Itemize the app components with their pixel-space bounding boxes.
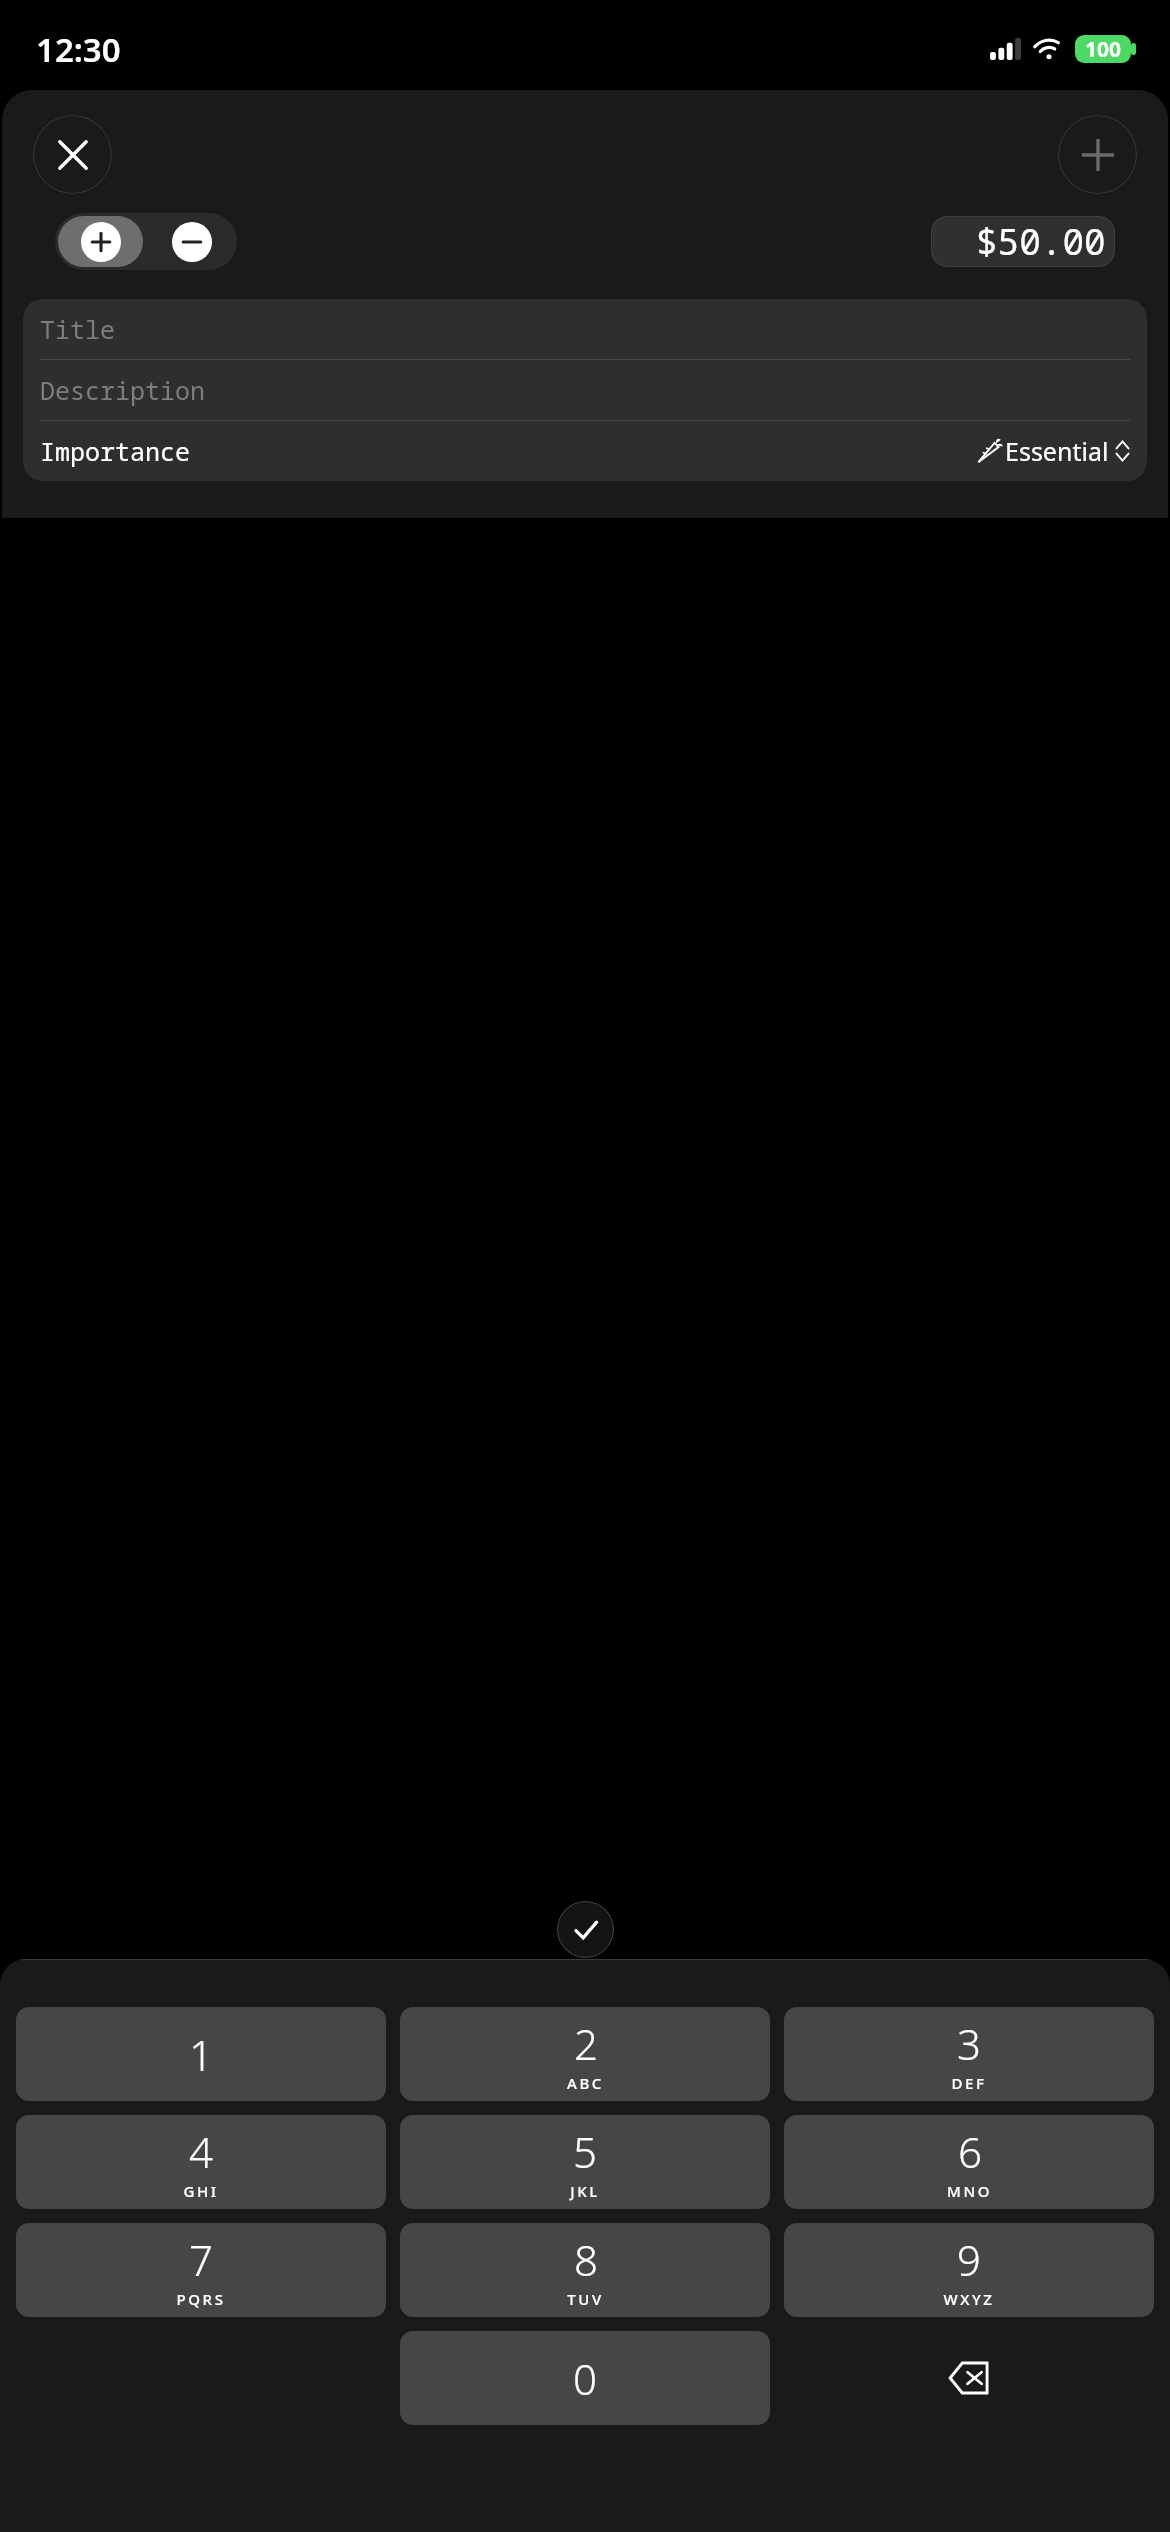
- button[interactable]: Title: [23, 299, 1147, 359]
- staticText: Title: [40, 312, 116, 346]
- staticText: 6: [958, 2123, 982, 2180]
- button[interactable]: Income: [58, 216, 143, 267]
- staticText: PQRS: [176, 2289, 226, 2309]
- staticText: 0: [573, 2350, 597, 2407]
- staticText: 7: [189, 2231, 213, 2288]
- staticText: 3: [957, 2015, 981, 2072]
- staticText: Essential: [1005, 434, 1109, 468]
- staticText: ABC: [567, 2073, 604, 2093]
- button[interactable]: 4: [16, 2115, 386, 2209]
- staticText: WXYZ: [943, 2289, 995, 2309]
- button[interactable]: Add: [1058, 115, 1137, 194]
- staticText: 1: [189, 2026, 213, 2083]
- staticText: 100: [1085, 35, 1122, 63]
- staticText: MNO: [947, 2181, 992, 2201]
- button[interactable]: Plus: [55, 213, 146, 270]
- staticText: DEF: [951, 2073, 987, 2093]
- staticText: 12:30: [36, 27, 121, 72]
- button[interactable]: 6: [784, 2115, 1154, 2209]
- staticText: 2: [574, 2015, 598, 2072]
- button[interactable]: Close: [33, 115, 112, 194]
- staticText: JKL: [570, 2181, 600, 2201]
- button[interactable]: Confirm: [557, 1901, 614, 1958]
- staticText: Description: [40, 373, 206, 407]
- button[interactable]: 2: [400, 2007, 770, 2101]
- button[interactable]: 5: [400, 2115, 770, 2209]
- button[interactable]: 8: [400, 2223, 770, 2317]
- button[interactable]: Importance: [23, 421, 1147, 481]
- staticText: 9: [957, 2231, 981, 2288]
- button[interactable]: 0: [400, 2331, 770, 2425]
- staticText: $50.00: [976, 217, 1106, 266]
- button[interactable]: Description: [23, 360, 1147, 420]
- staticText: GHI: [183, 2181, 219, 2201]
- button[interactable]: 7: [16, 2223, 386, 2317]
- staticText: 8: [574, 2231, 598, 2288]
- button[interactable]: $50.00: [931, 216, 1115, 267]
- staticText: TUV: [567, 2289, 604, 2309]
- staticText: 5: [573, 2123, 597, 2180]
- staticText: Importance: [40, 434, 191, 468]
- button[interactable]: Minus: [146, 213, 237, 270]
- button[interactable]: 9: [784, 2223, 1154, 2317]
- staticText: 4: [189, 2123, 213, 2180]
- button[interactable]: 1: [16, 2007, 386, 2101]
- button[interactable]: Backspace: [784, 2331, 1154, 2425]
- button[interactable]: 3: [784, 2007, 1154, 2101]
